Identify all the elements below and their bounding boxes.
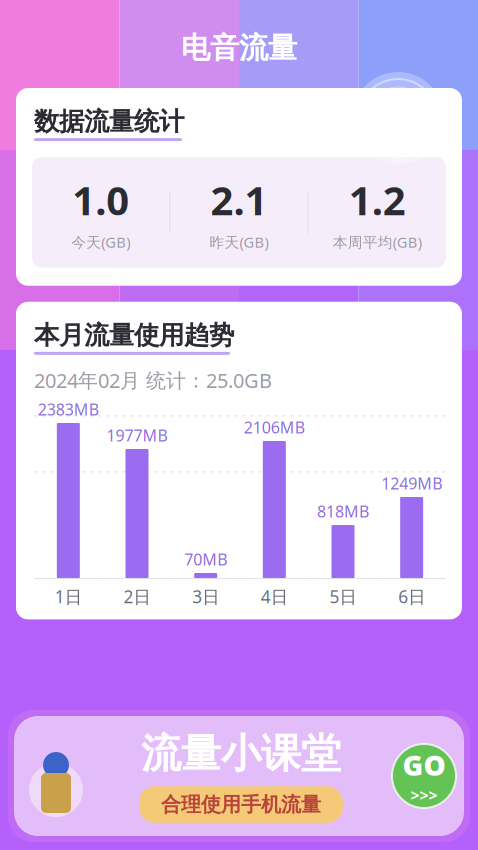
staticText: >>> <box>410 784 437 806</box>
staticText: 2.1 <box>210 173 267 226</box>
staticText: 流量小课堂 <box>141 729 341 778</box>
staticText: 本月流量使用趋势 <box>34 320 234 351</box>
staticText: 4日 <box>261 585 288 608</box>
staticText: 1.2 <box>349 173 406 226</box>
staticText: 5日 <box>329 585 356 608</box>
staticText: 2日 <box>123 585 150 608</box>
staticText: 6日 <box>398 585 425 608</box>
staticText: 818MB <box>317 501 369 522</box>
staticText: 电音流量 <box>181 30 297 66</box>
staticText: 1.0 <box>72 173 129 226</box>
staticText: 2106MB <box>244 417 305 438</box>
staticText: 2024年02月 统计：25.0GB <box>34 367 272 393</box>
staticText: 今天(GB) <box>71 232 130 252</box>
staticText: 1249MB <box>381 473 442 494</box>
staticText: 70MB <box>184 549 227 570</box>
staticText: 数据流量统计 <box>34 106 184 137</box>
staticText: 1日 <box>55 585 82 608</box>
staticText: 1977MB <box>106 425 167 446</box>
staticText: 昨天(GB) <box>209 232 268 252</box>
staticText: GO <box>402 746 445 783</box>
staticText: 合理使用手机流量 <box>161 792 321 817</box>
button[interactable]: 流量小课堂 <box>8 710 470 842</box>
staticText: 2383MB <box>38 399 99 420</box>
staticText: 3日 <box>192 585 219 608</box>
staticText: 本周平均(GB) <box>333 232 422 252</box>
